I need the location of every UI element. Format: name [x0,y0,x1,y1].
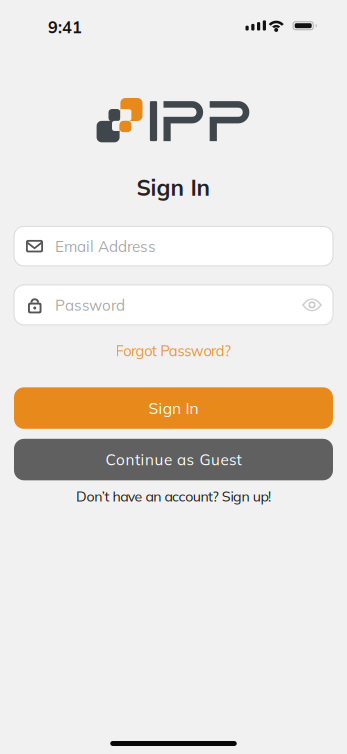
staticText: Email Address [55,237,156,256]
button[interactable]: Sign In [14,387,333,429]
button[interactable]: Show password [302,298,322,311]
staticText: Forgot Password? [116,341,231,360]
staticText: Don’t have an account? Sign up! [76,487,271,505]
staticText: Sign In [148,398,199,418]
staticText: Sign In [136,173,210,201]
staticText: 9:41 [48,17,82,37]
staticText: Password [55,295,125,314]
button[interactable]: Forgot Password? [112,337,235,364]
staticText: Continue as Guest [105,450,241,469]
button[interactable]: Don’t have an account? Sign up! [74,485,273,507]
button[interactable]: Continue as Guest [14,439,333,480]
